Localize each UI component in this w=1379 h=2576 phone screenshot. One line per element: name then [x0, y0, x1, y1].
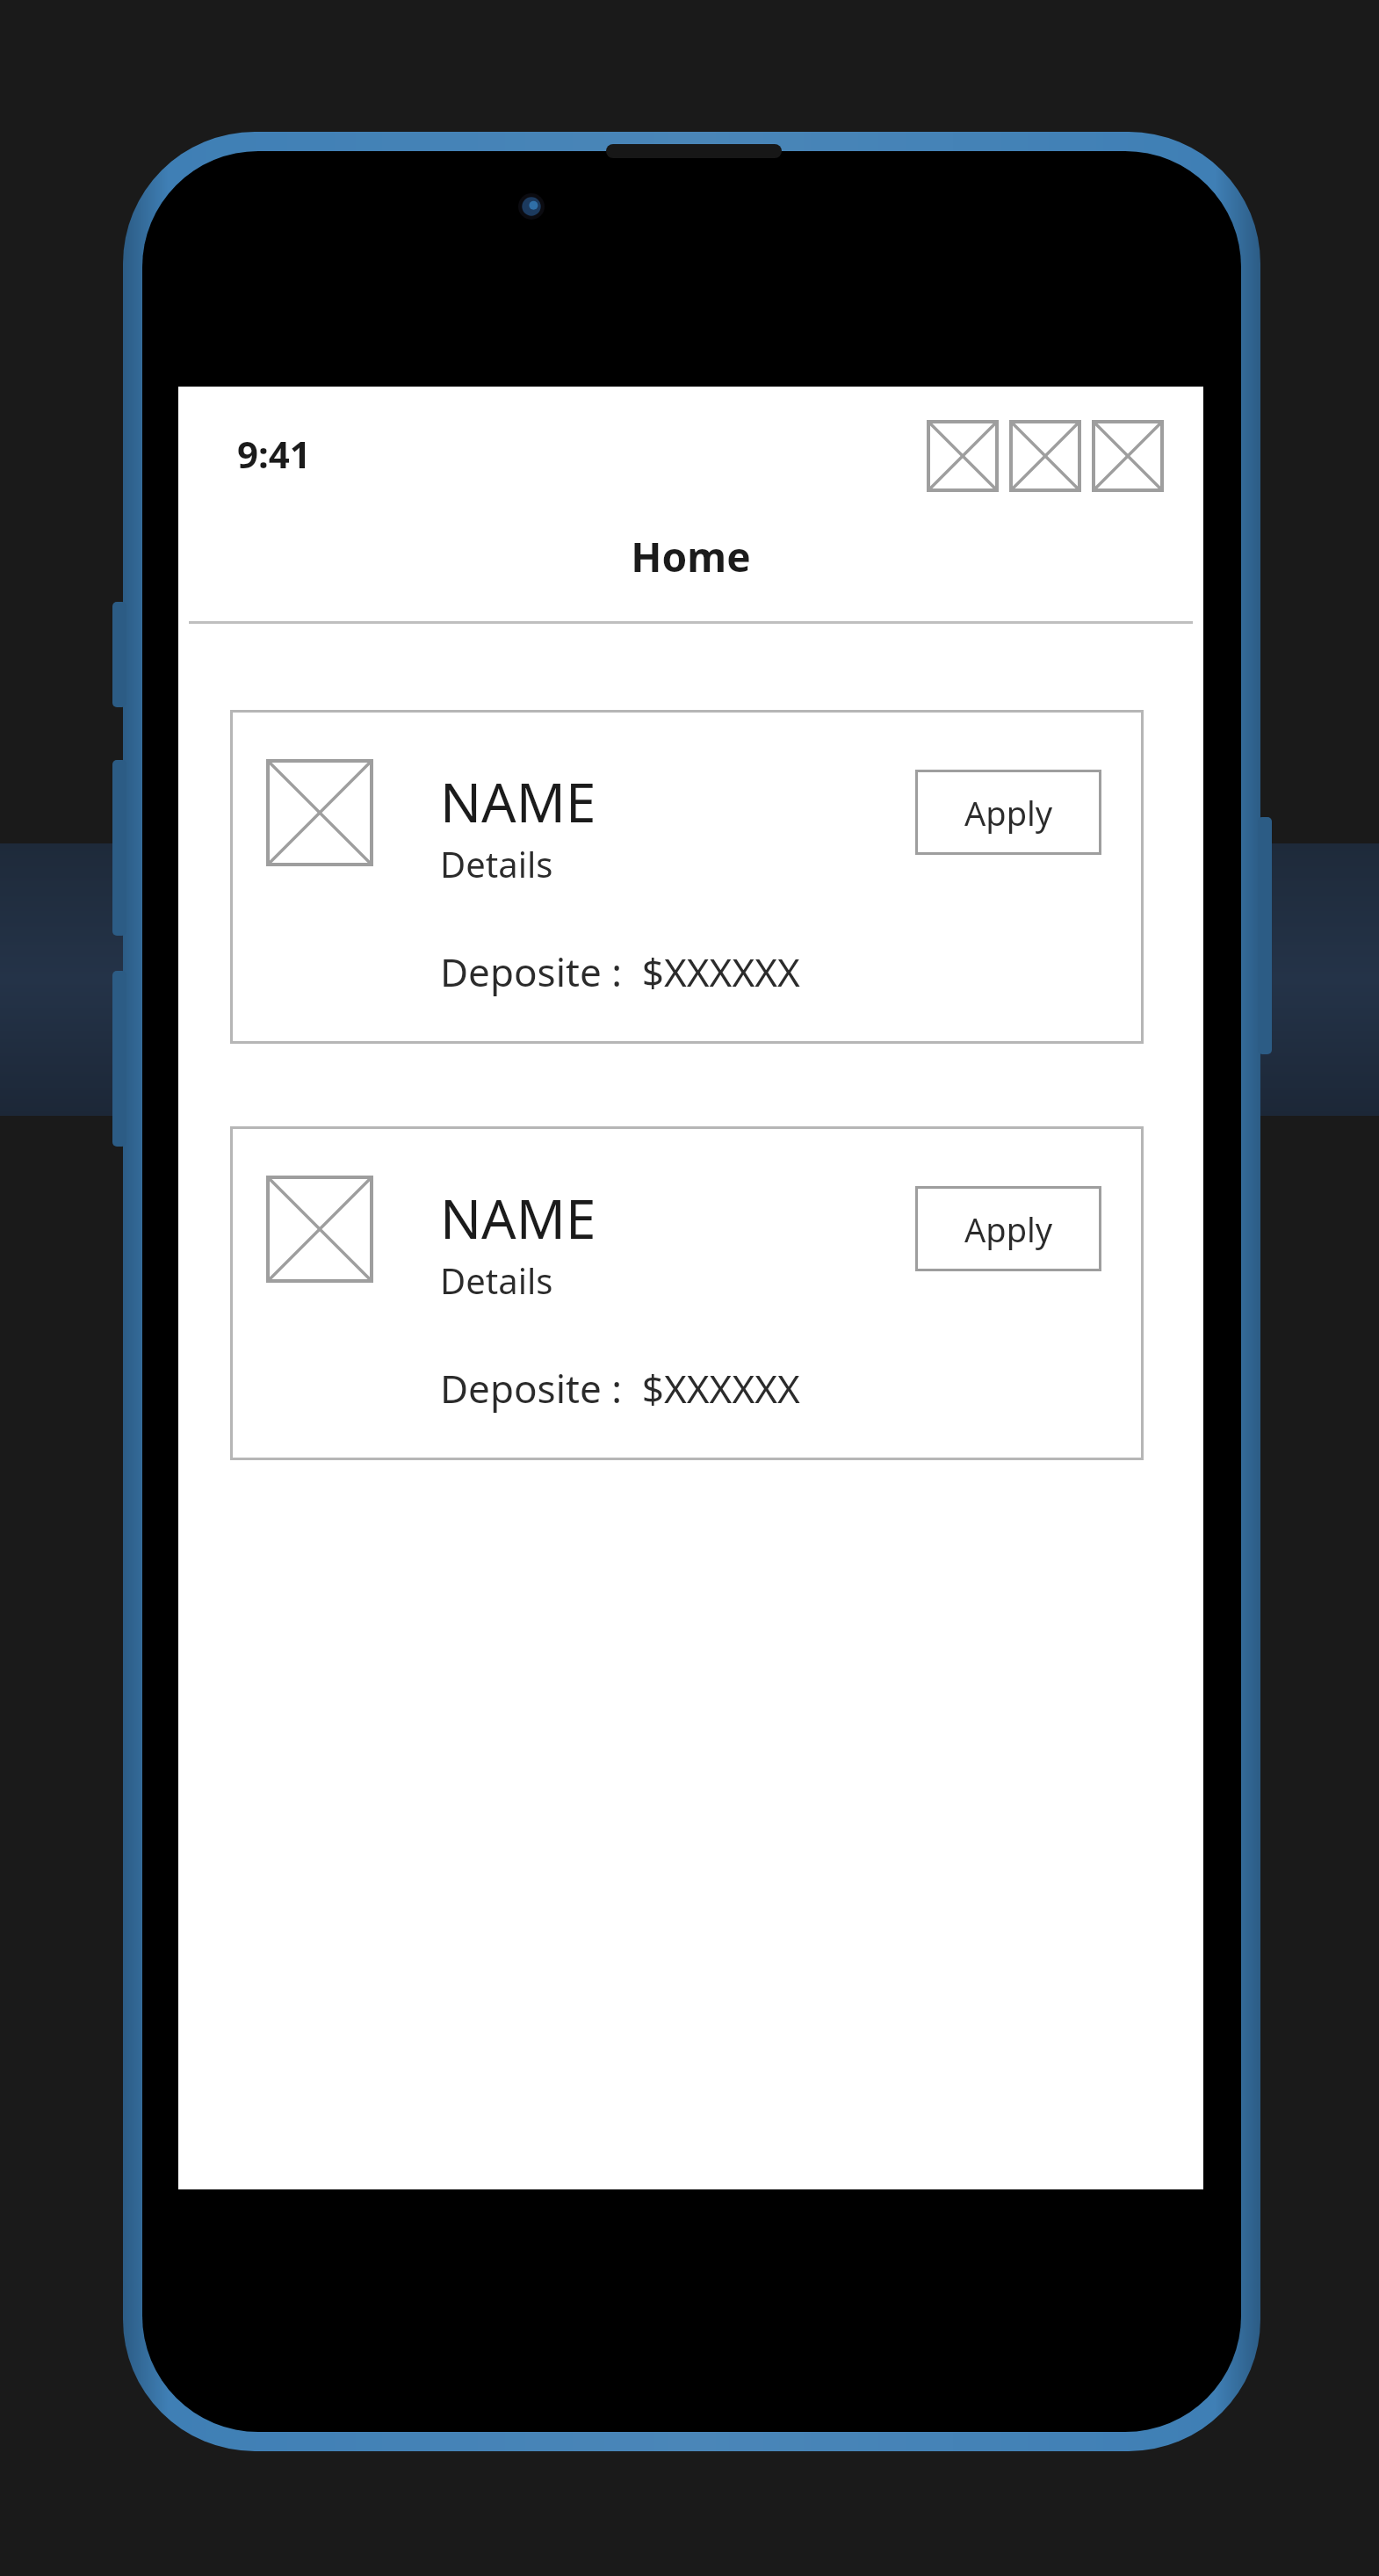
button[interactable]: NAME — [230, 1126, 1144, 1460]
button[interactable]: Status icon — [1092, 420, 1164, 492]
staticText: Home — [178, 529, 1203, 584]
staticText: Details — [440, 840, 553, 887]
staticText: Apply — [964, 790, 1053, 836]
button[interactable]: NAME — [230, 710, 1144, 1044]
button[interactable]: Status icon — [927, 420, 999, 492]
button[interactable]: Status icon — [1009, 420, 1081, 492]
staticText: Details — [440, 1256, 553, 1304]
staticText: Deposite : $XXXXXX — [440, 945, 800, 998]
staticText: Deposite : $XXXXXX — [440, 1362, 800, 1415]
button[interactable]: Apply — [915, 770, 1101, 855]
staticText: 9:41 — [237, 429, 311, 479]
staticText: NAME — [440, 1181, 596, 1255]
button[interactable]: Apply — [915, 1186, 1101, 1271]
staticText: NAME — [440, 764, 596, 838]
staticText: Apply — [964, 1206, 1053, 1252]
